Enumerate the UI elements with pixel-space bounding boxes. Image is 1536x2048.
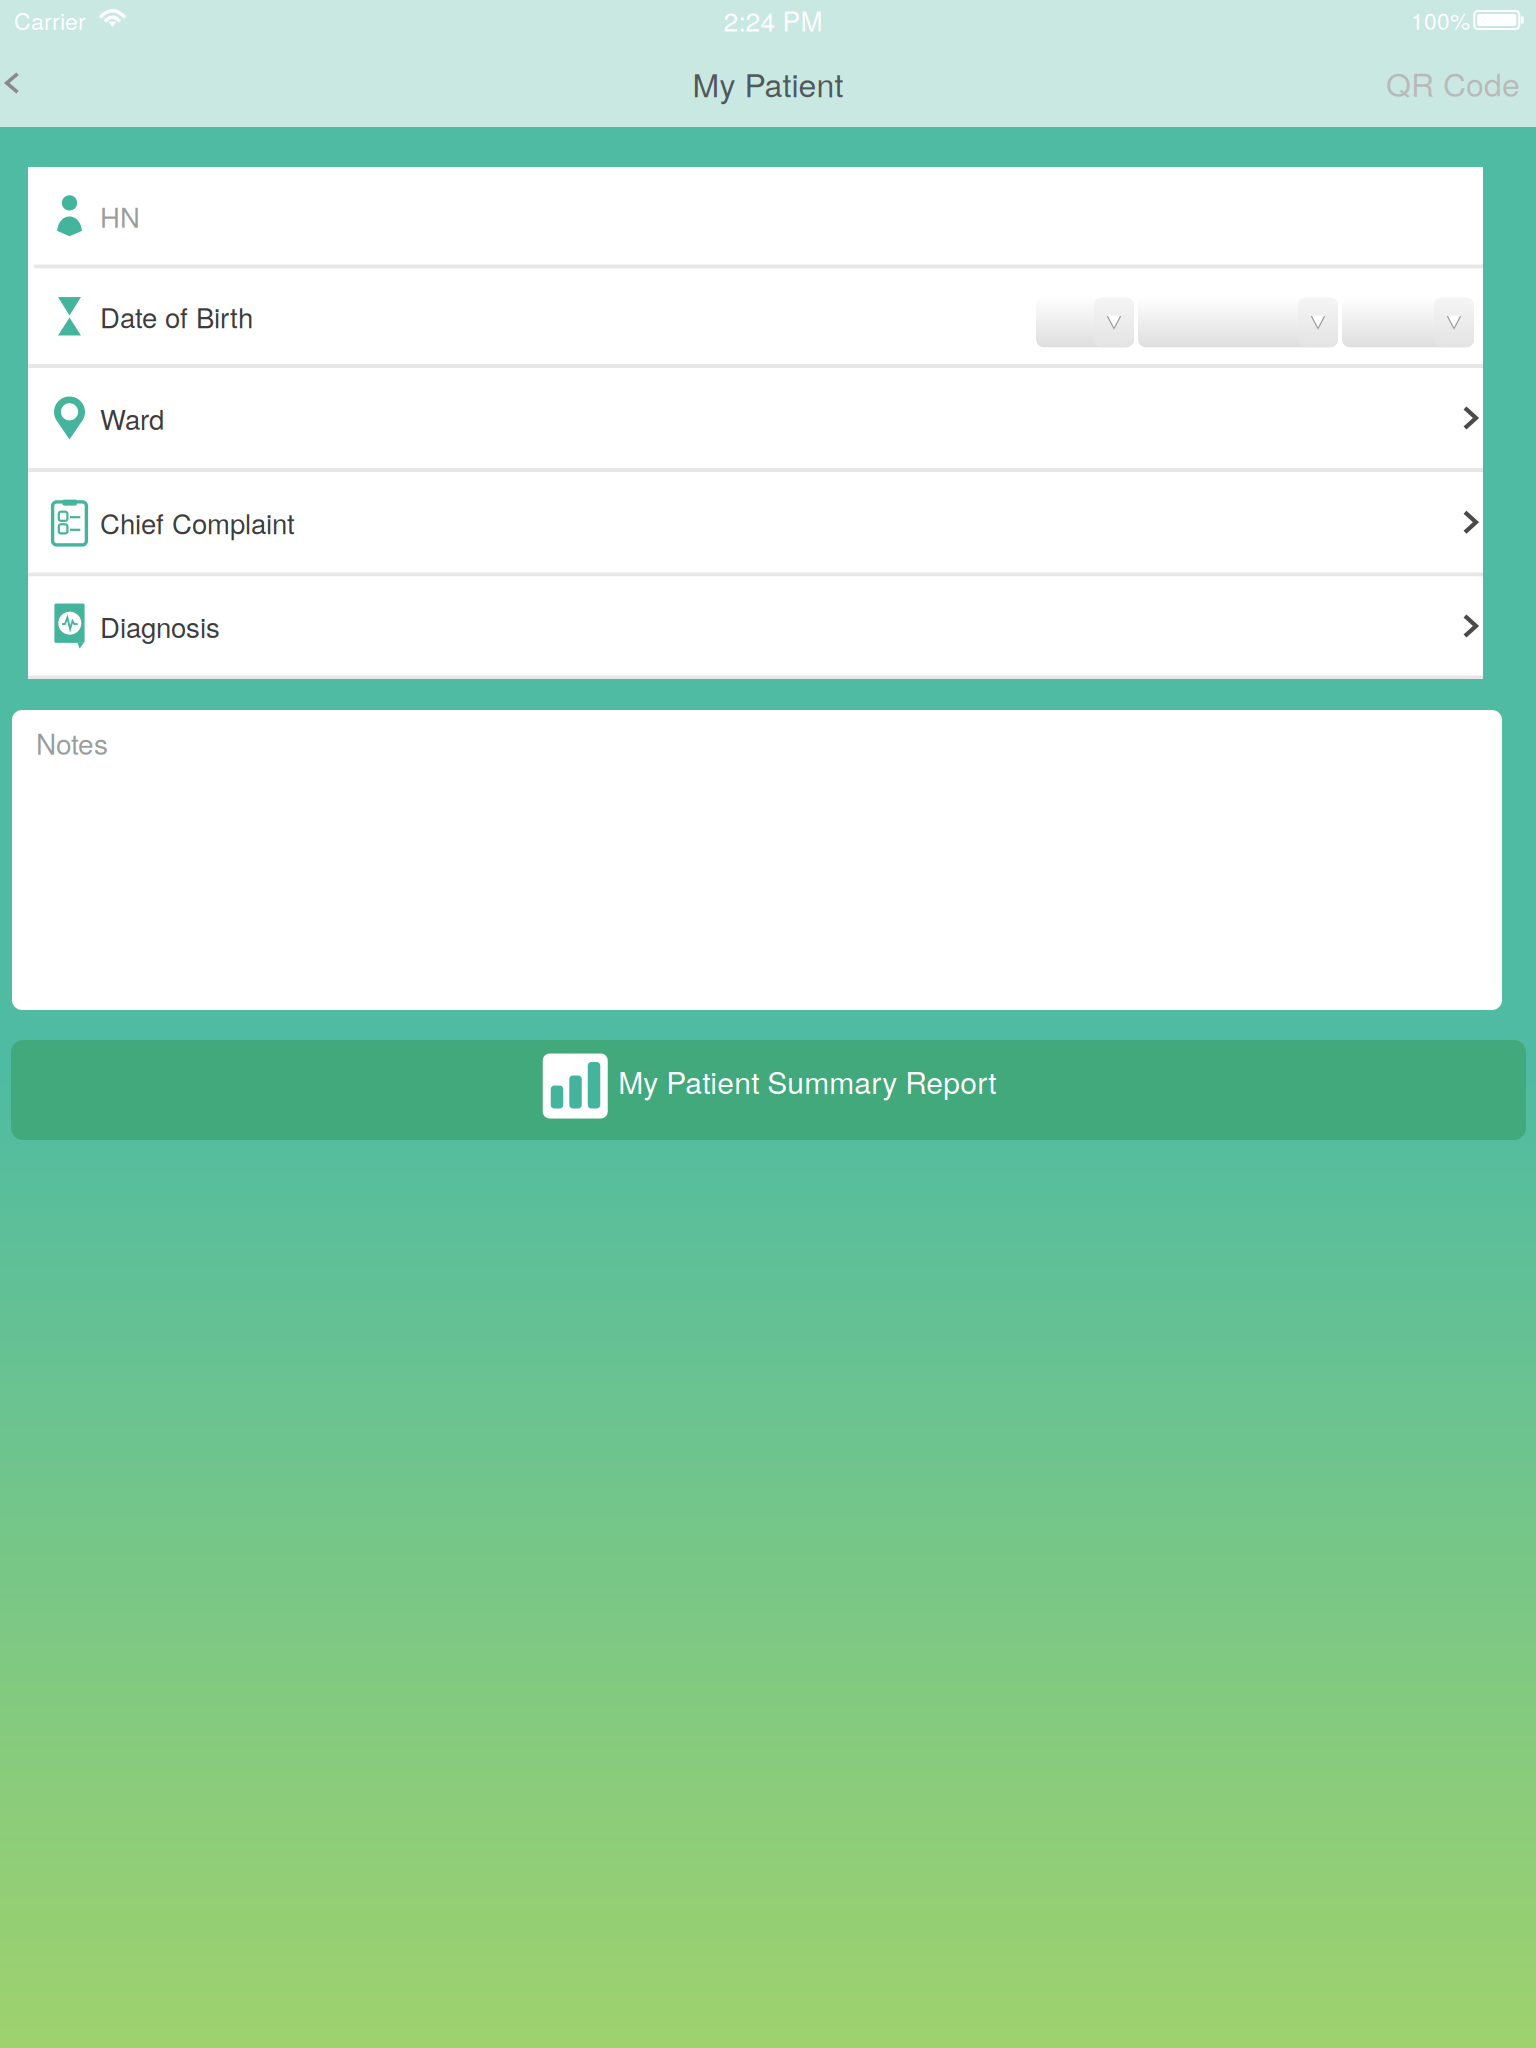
button[interactable]: Day bbox=[1036, 297, 1134, 347]
staticText: My Patient Summary Report bbox=[618, 1059, 996, 1102]
staticText: My Patient bbox=[692, 61, 843, 106]
staticText: HN bbox=[100, 196, 140, 235]
button[interactable]: Notes bbox=[12, 710, 1502, 1010]
button[interactable]: My Patient Summary Report bbox=[11, 1040, 1526, 1140]
staticText: Ward bbox=[100, 398, 164, 438]
staticText: Date of Birth bbox=[100, 297, 253, 336]
button[interactable]: Year bbox=[1342, 297, 1474, 347]
staticText: 2:24 PM bbox=[723, 1, 822, 39]
button[interactable]: Ward bbox=[28, 368, 1483, 468]
button[interactable]: QR Code bbox=[1300, 53, 1536, 113]
button[interactable]: HN bbox=[28, 167, 1483, 264]
staticText: 100% bbox=[1411, 4, 1470, 36]
button[interactable]: Month bbox=[1138, 297, 1338, 347]
staticText: Diagnosis bbox=[100, 606, 220, 646]
staticText: Chief Complaint bbox=[100, 503, 295, 542]
button[interactable]: Diagnosis bbox=[28, 576, 1483, 675]
staticText: QR Code bbox=[1386, 60, 1520, 106]
button[interactable]: Chief Complaint bbox=[28, 472, 1483, 572]
staticText: Carrier bbox=[14, 3, 86, 36]
button[interactable]: Back bbox=[0, 53, 34, 113]
staticText: Notes bbox=[36, 722, 108, 763]
